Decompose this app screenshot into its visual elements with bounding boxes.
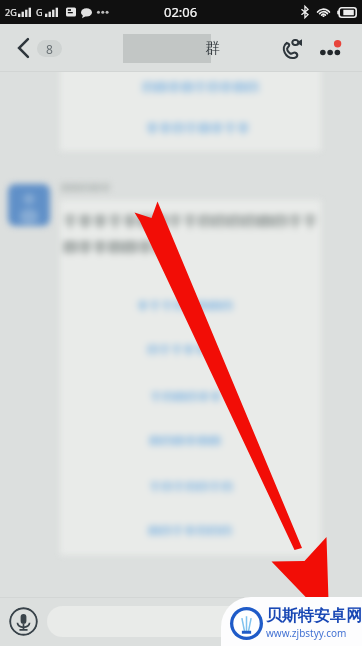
button[interactable]: Voice message [9, 607, 38, 636]
staticText: 群 [205, 39, 220, 58]
staticText: 8 [46, 41, 53, 57]
staticText: G [36, 6, 43, 18]
staticText: 02:06 [164, 3, 198, 21]
button[interactable] [47, 606, 352, 637]
staticText: www.zjbstyy.com [266, 626, 347, 640]
staticText: 2G [5, 6, 17, 18]
button[interactable]: More options [314, 33, 348, 64]
staticText: 贝斯特安卓网 [266, 606, 362, 626]
button[interactable]: Back, 8 unread [12, 31, 67, 65]
button[interactable]: Video call [275, 33, 306, 64]
